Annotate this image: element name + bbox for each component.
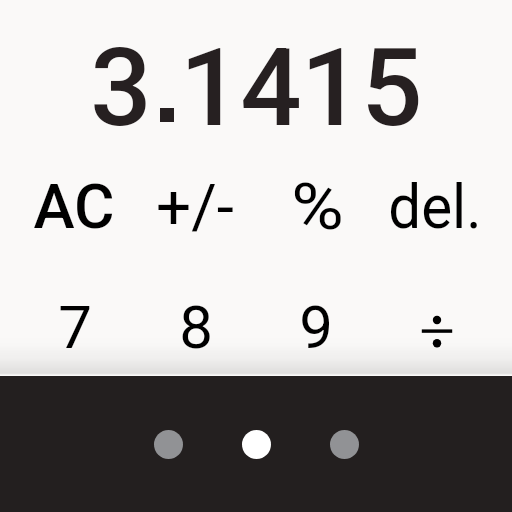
staticText: del. [388, 170, 482, 243]
staticText: 9 [299, 292, 333, 362]
button[interactable]: 3.1415 [0, 0, 512, 140]
staticText: % [291, 170, 344, 245]
button[interactable]: 8 [136, 292, 256, 368]
button[interactable]: AC [14, 170, 134, 246]
button[interactable]: Page 1 [154, 430, 183, 459]
staticText: 3.1415 [0, 25, 512, 152]
button[interactable]: 9 [256, 292, 376, 368]
staticText: 7 [58, 292, 92, 362]
button[interactable]: 7 [15, 292, 135, 368]
staticText: 8 [179, 292, 213, 362]
staticText: +/- [156, 170, 234, 243]
button[interactable]: Divide [377, 292, 497, 368]
button[interactable]: % [257, 170, 377, 246]
button[interactable]: Page 2 [242, 430, 271, 459]
staticText: AC [33, 170, 115, 243]
button[interactable]: Page 3 [330, 430, 359, 459]
button[interactable]: del. [375, 170, 495, 246]
button[interactable]: +/- [135, 170, 255, 246]
